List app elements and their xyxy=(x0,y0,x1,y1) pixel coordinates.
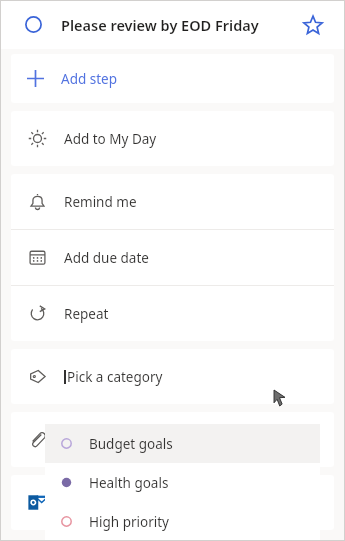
button[interactable]: Mark task complete xyxy=(0,0,345,49)
button[interactable]: Budget goals xyxy=(45,424,320,463)
button[interactable]: Add step xyxy=(11,54,334,103)
button[interactable]: Add file xyxy=(11,412,334,467)
button[interactable]: Open in Outlook xyxy=(11,475,334,530)
button[interactable]: Remind me xyxy=(11,174,334,229)
button[interactable]: Pick a category xyxy=(11,349,334,404)
button[interactable]: Add to My Day xyxy=(11,111,334,166)
staticText: Add step xyxy=(61,70,117,88)
button[interactable]: Repeat xyxy=(11,286,334,341)
button[interactable]: Mark task complete xyxy=(25,16,42,33)
staticText: Health goals xyxy=(89,474,169,492)
staticText: Repeat xyxy=(64,305,109,323)
staticText: Add due date xyxy=(64,249,149,267)
staticText: Remind me xyxy=(64,193,137,211)
staticText: Add to My Day xyxy=(64,130,157,148)
button[interactable]: Health goals xyxy=(45,463,320,502)
staticText: Budget goals xyxy=(89,435,173,453)
button[interactable]: Add due date xyxy=(11,230,334,285)
staticText: Please review by EOD Friday xyxy=(61,15,259,35)
staticText: Pick a category xyxy=(67,368,163,386)
button[interactable]: Add to important xyxy=(303,15,323,35)
button[interactable]: High priority xyxy=(45,502,320,541)
staticText: High priority xyxy=(89,513,169,531)
